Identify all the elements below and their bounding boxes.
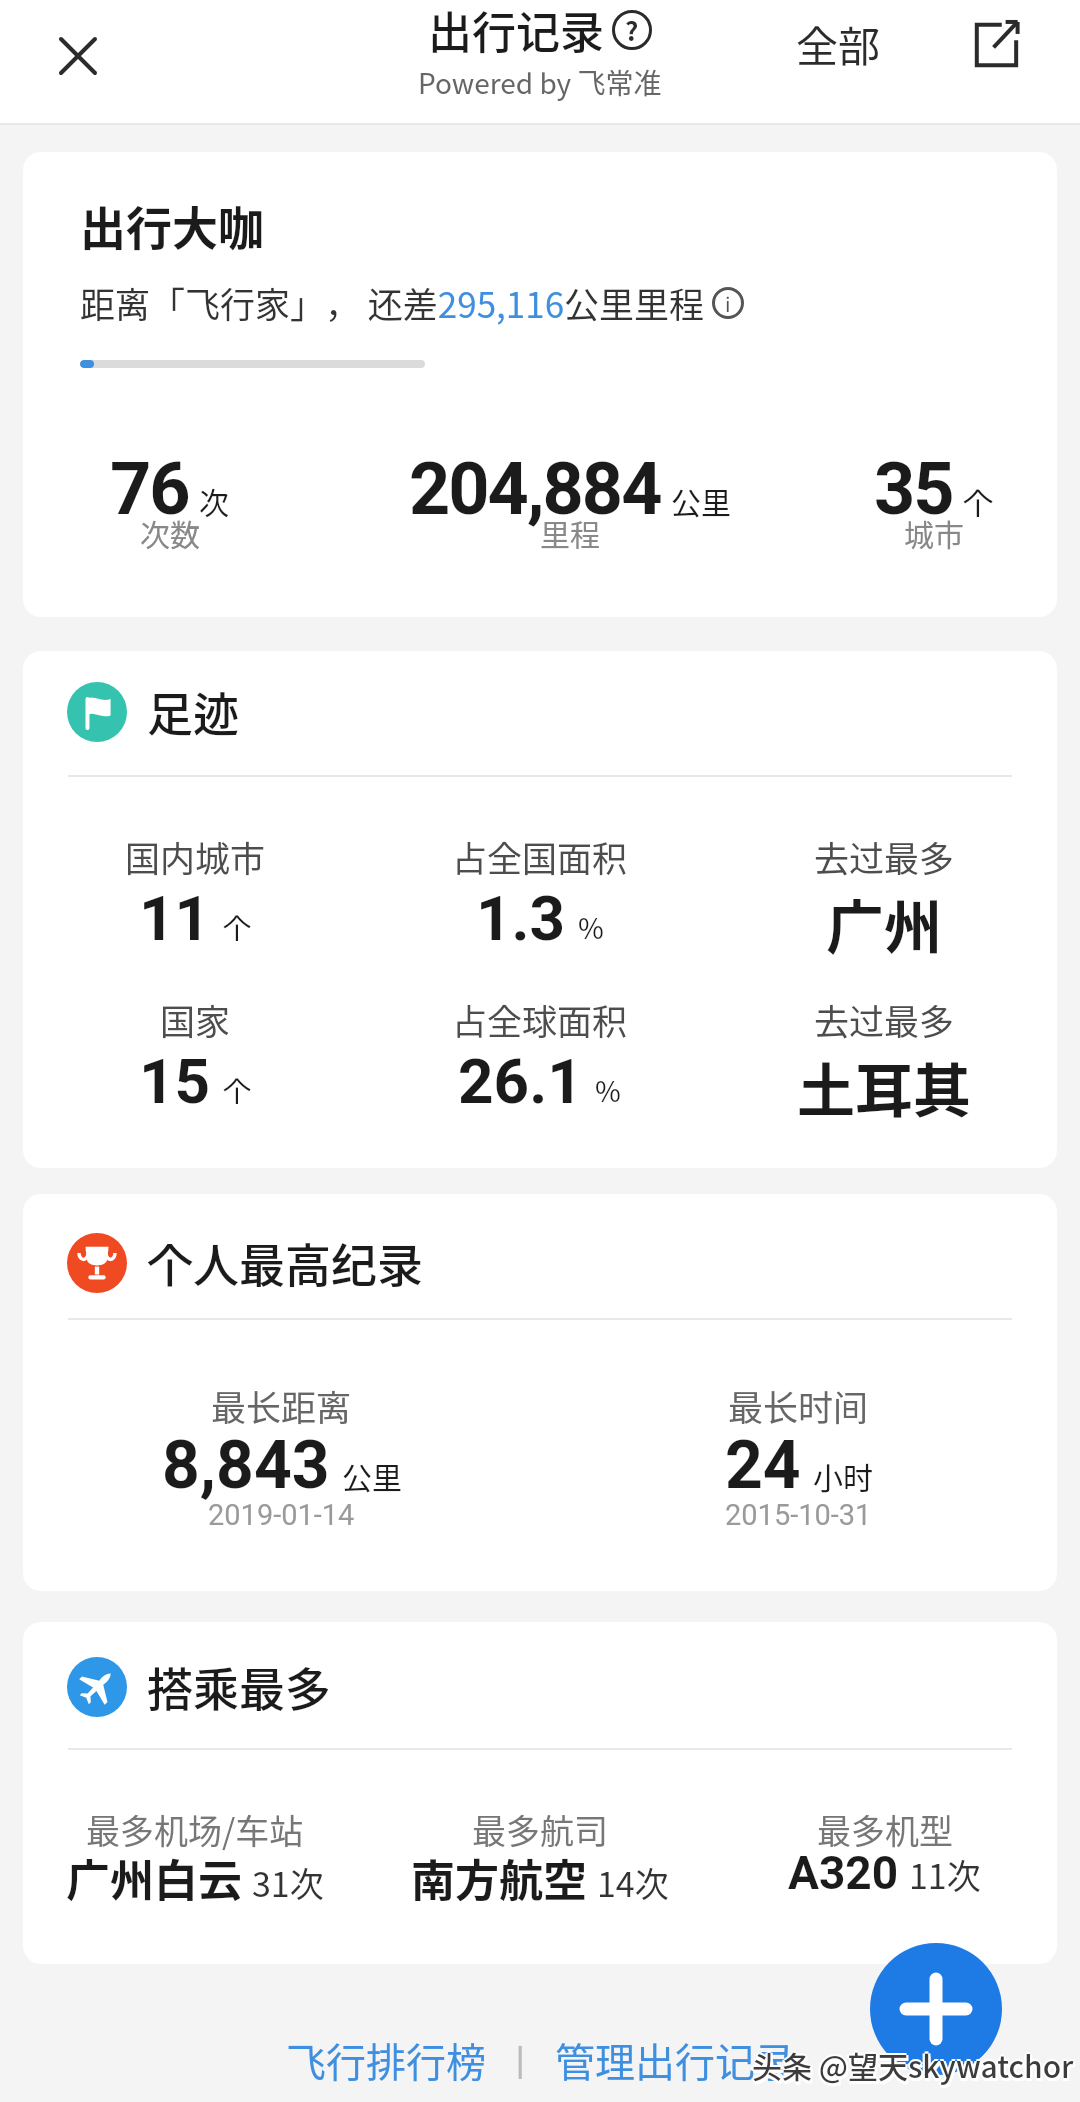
staticText: 11 (139, 882, 211, 955)
staticText: 11次 (909, 1850, 981, 1899)
staticText: 8,843 (162, 1427, 330, 1504)
staticText: 去过最多 (814, 994, 955, 1045)
staticText: 次 (199, 479, 229, 522)
staticText: 出行记录 (428, 0, 604, 62)
button[interactable] (50, 28, 106, 84)
staticText: 国家 (160, 994, 231, 1045)
staticText: 最长时间 (728, 1380, 869, 1431)
staticText: 距离「飞行家」， 还差295,116公里里程 (80, 277, 712, 328)
button[interactable]: 全部 (796, 13, 881, 74)
staticText: % (578, 907, 604, 948)
staticText: 最长距离 (211, 1380, 352, 1431)
staticText: 2019-01-14 (208, 1498, 355, 1532)
staticText: 公里 (342, 1454, 402, 1497)
staticText: 小时 (813, 1454, 873, 1497)
staticText: ? (625, 11, 639, 49)
staticText: 个 (963, 479, 993, 522)
staticText: 35 (874, 447, 953, 531)
staticText: 1.3 (476, 882, 566, 955)
staticText: 足迹 (147, 678, 239, 745)
staticText: 头条 @望天skywatchor (752, 2046, 1074, 2089)
staticText: 出行大咖 (80, 192, 264, 259)
staticText: 2015-10-31 (725, 1498, 872, 1532)
staticText: 最多航司 (472, 1805, 608, 1854)
staticText: 个 (223, 907, 252, 948)
staticText: 头条 @望天skywatchor (752, 2041, 1074, 2084)
staticText: % (595, 1070, 621, 1111)
staticText: 广州 (826, 882, 943, 966)
staticText: 头条 @望天skywatchor (752, 2043, 1074, 2086)
staticText: 31次 (252, 1858, 324, 1907)
staticText: 次数 (140, 511, 200, 554)
staticText: 占全国面积 (452, 831, 628, 882)
staticText: 南方航空 (411, 1846, 587, 1910)
staticText: 土耳其 (797, 1045, 972, 1129)
staticText: 204,884 (409, 447, 661, 531)
staticText: 个 (223, 1070, 252, 1111)
staticText: 搭乘最多 (147, 1653, 331, 1720)
button[interactable]: i (712, 287, 744, 319)
staticText: 最多机型 (817, 1805, 953, 1854)
staticText: A320 (788, 1846, 899, 1900)
staticText: 城市 (904, 511, 964, 554)
staticText: 头条 @望天skywatchor (750, 2043, 1072, 2086)
staticText: 14次 (597, 1858, 669, 1907)
staticText: 占全球面积 (452, 994, 628, 1045)
staticText: 公里 (671, 479, 731, 522)
staticText: Powered by 飞常准 (418, 62, 662, 103)
button[interactable] (968, 17, 1024, 73)
button[interactable]: 飞行排行榜 (286, 2031, 486, 2089)
button[interactable]: ? (612, 10, 652, 50)
staticText: 广州白云 (66, 1846, 242, 1910)
staticText: 24 (725, 1427, 801, 1504)
button[interactable]: 管理出行记录 (555, 2031, 795, 2089)
staticText: 国内城市 (125, 831, 266, 882)
staticText: 丨 (486, 2034, 555, 2086)
staticText: 26.1 (458, 1045, 583, 1118)
button[interactable] (870, 1943, 1002, 2075)
staticText: 个人最高纪录 (147, 1229, 423, 1296)
staticText: 去过最多 (814, 831, 955, 882)
staticText: i (725, 289, 731, 318)
staticText: 头条 @望天skywatchor (754, 2046, 1076, 2089)
staticText: 最多机场/车站 (86, 1805, 304, 1854)
staticText: 76 (110, 447, 189, 531)
staticText: 头条 @望天skywatchor (754, 2043, 1076, 2086)
staticText: 里程 (540, 511, 600, 554)
staticText: 15 (139, 1045, 211, 1118)
